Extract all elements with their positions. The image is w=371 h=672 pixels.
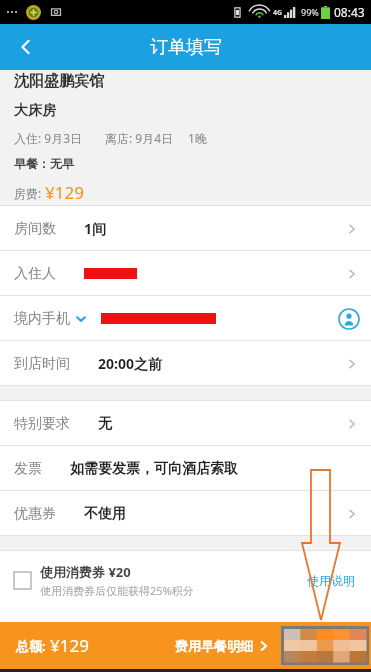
button[interactable]: 特别要求	[0, 401, 371, 446]
staticText: 费用早餐明细	[175, 638, 253, 654]
staticText: 房费:	[14, 185, 45, 201]
staticText: 到店时间	[14, 355, 70, 373]
staticText: 特别要求	[14, 415, 70, 433]
staticText: 入住: 9月3日	[14, 130, 83, 146]
staticText: 入住人	[14, 265, 56, 283]
button[interactable]: 费用早餐明细	[169, 630, 277, 662]
staticText: 99%	[301, 6, 319, 18]
button[interactable]: Submit order	[284, 629, 366, 662]
staticText: 1晚	[188, 130, 207, 146]
button[interactable]: Back	[0, 24, 52, 70]
staticText: 无	[98, 415, 112, 433]
button[interactable]: 入住人	[0, 251, 371, 296]
staticText: ¥129	[50, 634, 89, 657]
staticText: 沈阳盛鹏宾馆	[14, 72, 104, 91]
staticText: 境内手机	[14, 310, 70, 328]
staticText: 使用说明	[307, 573, 355, 588]
staticText: 4G	[273, 8, 283, 18]
staticText: 08:43	[334, 4, 365, 20]
staticText: 如需要发票，可向酒店索取	[70, 460, 238, 478]
button[interactable]: 使用说明	[303, 569, 359, 592]
staticText: 发票	[14, 460, 42, 478]
staticText: 优惠券	[14, 505, 56, 523]
staticText: 早餐：无早	[14, 156, 74, 171]
staticText: 1间	[84, 219, 107, 238]
staticText: ¥129	[45, 181, 84, 204]
staticText: 总额:	[16, 637, 50, 655]
staticText: 大床房	[14, 102, 56, 120]
button[interactable]: 境内手机	[0, 296, 371, 341]
staticText: 20:00之前	[98, 354, 162, 373]
button[interactable]: 优惠券	[0, 491, 371, 536]
button[interactable]: 发票	[0, 446, 371, 491]
staticText: 使用消费券 ¥20	[40, 563, 131, 581]
staticText: 离店: 9月4日	[105, 130, 174, 146]
button[interactable]: 房间数	[0, 206, 371, 251]
staticText: 使用消费券后仅能获得25%积分	[40, 583, 194, 598]
button[interactable]: 到店时间	[0, 341, 371, 386]
staticText: 不使用	[84, 505, 126, 523]
staticText: 订单填写	[150, 36, 222, 59]
staticText: 房间数	[14, 220, 56, 238]
button[interactable]: 使用消费券 ¥20	[14, 563, 303, 598]
